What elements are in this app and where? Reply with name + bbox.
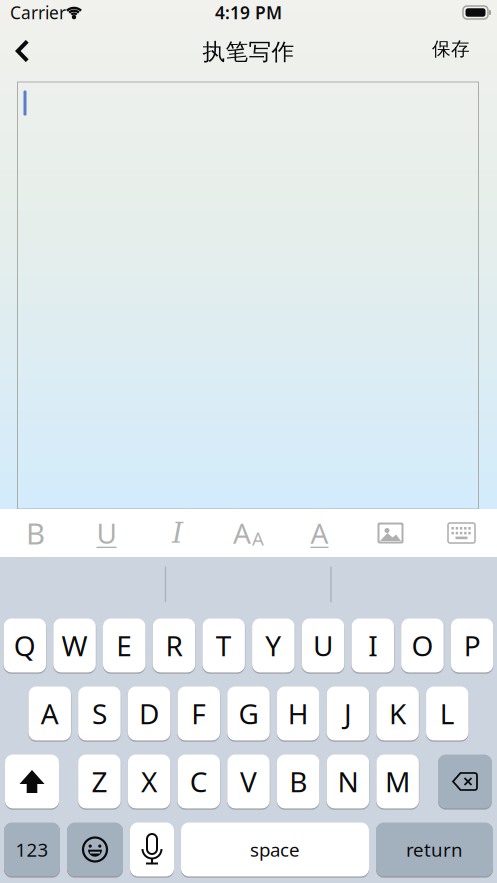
button[interactable]: E	[103, 618, 145, 672]
button[interactable]: Shift	[5, 754, 59, 808]
button[interactable]: Y	[252, 618, 295, 672]
button[interactable]: G	[227, 686, 270, 740]
staticText: P	[464, 627, 481, 664]
button[interactable]: Delete	[438, 754, 492, 808]
button[interactable]: O	[401, 618, 444, 672]
button[interactable]: B	[277, 754, 319, 808]
staticText: space	[250, 837, 300, 862]
staticText: H	[288, 695, 309, 732]
staticText: 123	[15, 837, 48, 862]
staticText: Q	[14, 627, 36, 664]
button[interactable]: F	[178, 686, 220, 740]
staticText: 执笔写作	[202, 38, 294, 66]
button[interactable]: C	[178, 754, 220, 808]
staticText: A	[41, 695, 59, 732]
button[interactable]: Text Color	[284, 509, 355, 557]
staticText: A	[310, 514, 328, 552]
button[interactable]: X	[128, 754, 170, 808]
staticText: S	[92, 695, 107, 732]
staticText: K	[389, 695, 406, 732]
button[interactable]: Underline	[71, 509, 142, 557]
staticText: A	[252, 526, 264, 551]
staticText: G	[238, 695, 258, 732]
staticText: L	[440, 695, 455, 732]
button[interactable]: Bold	[0, 509, 71, 557]
staticText: V	[240, 763, 257, 800]
button[interactable]: Italic	[142, 509, 213, 557]
staticText: Y	[265, 627, 281, 664]
staticText: U	[96, 514, 116, 552]
staticText: B	[289, 763, 307, 800]
staticText: D	[139, 695, 159, 732]
button[interactable]: N	[327, 754, 369, 808]
staticText: R	[165, 627, 182, 664]
button[interactable]: 保存	[432, 37, 497, 60]
button[interactable]: Emoji	[67, 822, 123, 876]
staticText: B	[26, 513, 45, 552]
button[interactable]: U	[302, 618, 344, 672]
staticText: 保存	[432, 37, 470, 60]
staticText: C	[190, 763, 208, 800]
button[interactable]: Back	[0, 37, 39, 60]
button[interactable]: 123	[4, 822, 60, 876]
staticText: M	[385, 763, 410, 800]
button[interactable]: H	[277, 686, 319, 740]
button[interactable]: R	[153, 618, 195, 672]
staticText: N	[337, 763, 358, 800]
button[interactable]: Z	[78, 754, 121, 808]
button[interactable]: S	[78, 686, 121, 740]
staticText: 4:19 PM	[215, 1, 282, 24]
button[interactable]: T	[202, 618, 245, 672]
button[interactable]: M	[376, 754, 419, 808]
button[interactable]: space	[181, 822, 369, 876]
staticText: A	[233, 514, 251, 552]
staticText: I	[368, 627, 377, 664]
button[interactable]: Q	[4, 618, 46, 672]
button[interactable]: Text Size	[213, 509, 284, 557]
button[interactable]: V	[227, 754, 270, 808]
staticText: O	[411, 627, 433, 664]
staticText: I	[172, 517, 183, 549]
button[interactable]: J	[327, 686, 369, 740]
button[interactable]: Insert Photo	[355, 509, 426, 557]
staticText: Carrier	[10, 1, 66, 24]
button[interactable]: K	[376, 686, 419, 740]
button[interactable]: P	[451, 618, 493, 672]
button[interactable]: W	[53, 618, 96, 672]
staticText: F	[191, 695, 206, 732]
staticText: X	[141, 763, 157, 800]
button[interactable]: L	[426, 686, 468, 740]
staticText: J	[344, 695, 352, 732]
staticText: U	[313, 627, 333, 664]
button[interactable]: I	[351, 618, 394, 672]
staticText: W	[61, 627, 87, 664]
staticText: E	[116, 627, 132, 664]
button[interactable]: Hide Keyboard	[426, 509, 497, 557]
staticText: Z	[91, 763, 107, 800]
button[interactable]: return	[376, 822, 493, 876]
staticText: return	[406, 837, 463, 862]
button[interactable]: A	[28, 686, 71, 740]
staticText: T	[216, 627, 232, 664]
button[interactable]: D	[128, 686, 170, 740]
button[interactable]: Dictate	[130, 822, 174, 876]
